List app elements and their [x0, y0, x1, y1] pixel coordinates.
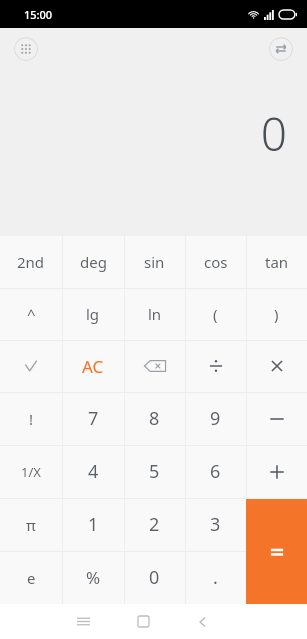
- staticText: 2nd: [17, 252, 45, 272]
- button[interactable]: %: [62, 551, 124, 604]
- button[interactable]: cos: [185, 236, 246, 288]
- staticText: 7: [88, 406, 99, 431]
- button[interactable]: Back: [182, 604, 224, 639]
- staticText: cos: [204, 252, 228, 272]
- staticText: tan: [265, 252, 289, 272]
- button[interactable]: 5: [124, 445, 185, 498]
- button[interactable]: .: [185, 551, 246, 604]
- button[interactable]: (: [185, 288, 246, 340]
- staticText: 6: [210, 459, 221, 484]
- button[interactable]: 2nd: [0, 236, 62, 288]
- staticText: 5: [149, 459, 160, 484]
- button[interactable]: e: [0, 551, 62, 604]
- staticText: 15:00: [24, 7, 53, 22]
- button[interactable]: 9: [185, 392, 246, 445]
- button[interactable]: π: [0, 498, 62, 551]
- button[interactable]: Switch mode: [269, 37, 293, 61]
- button[interactable]: Menu: [62, 604, 104, 639]
- button[interactable]: 4: [62, 445, 124, 498]
- staticText: e: [27, 568, 36, 588]
- staticText: 3: [210, 512, 221, 537]
- staticText: 1: [88, 512, 99, 537]
- staticText: 1/X: [21, 463, 41, 481]
- staticText: lg: [86, 304, 100, 324]
- staticText: 8: [149, 406, 160, 431]
- button[interactable]: Backspace: [124, 340, 185, 392]
- button[interactable]: Square root: [0, 340, 62, 392]
- staticText: !: [29, 409, 34, 429]
- staticText: ln: [148, 304, 162, 324]
- button[interactable]: 3: [185, 498, 246, 551]
- button[interactable]: 7: [62, 392, 124, 445]
- button[interactable]: tan: [246, 236, 307, 288]
- staticText: deg: [80, 252, 107, 272]
- staticText: 9: [210, 406, 221, 431]
- button[interactable]: deg: [62, 236, 124, 288]
- staticText: (: [213, 304, 218, 324]
- staticText: ^: [27, 304, 36, 324]
- button[interactable]: !: [0, 392, 62, 445]
- button[interactable]: Divide: [185, 340, 246, 392]
- staticText: 4: [88, 459, 99, 484]
- button[interactable]: sin: [124, 236, 185, 288]
- button[interactable]: lg: [62, 288, 124, 340]
- staticText: .: [213, 565, 218, 590]
- staticText: π: [26, 515, 36, 535]
- button[interactable]: ^: [0, 288, 62, 340]
- staticText: AC: [82, 355, 104, 378]
- staticText: sin: [144, 252, 165, 272]
- staticText: 0: [260, 102, 287, 165]
- button[interactable]: Multiply: [246, 340, 307, 392]
- button[interactable]: ln: [124, 288, 185, 340]
- button[interactable]: AC: [62, 340, 124, 392]
- staticText: 2: [149, 512, 160, 537]
- button[interactable]: Home: [122, 604, 164, 639]
- button[interactable]: ): [246, 288, 307, 340]
- button[interactable]: Plus: [246, 445, 307, 498]
- button[interactable]: 1/X: [0, 445, 62, 498]
- button[interactable]: 0: [124, 551, 185, 604]
- button[interactable]: 8: [124, 392, 185, 445]
- button[interactable]: 6: [185, 445, 246, 498]
- button[interactable]: Minus: [246, 392, 307, 445]
- button[interactable]: 2: [124, 498, 185, 551]
- button[interactable]: Equals: [246, 499, 307, 604]
- staticText: ): [274, 304, 279, 324]
- staticText: %: [86, 566, 101, 589]
- button[interactable]: 1: [62, 498, 124, 551]
- staticText: 0: [149, 565, 160, 590]
- button[interactable]: Apps: [14, 37, 38, 61]
